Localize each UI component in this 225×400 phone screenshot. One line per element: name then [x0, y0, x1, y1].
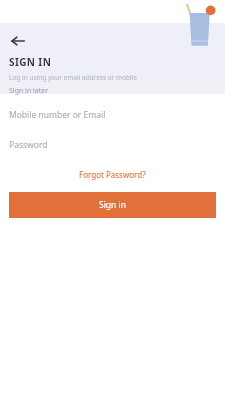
staticText: Mobile number or Email: [9, 109, 106, 121]
button[interactable]: Password: [9, 133, 216, 157]
staticText: Sign in later: [9, 86, 49, 96]
button[interactable]: Sign in: [9, 192, 216, 218]
staticText: Log in using your email address or mobil…: [9, 73, 138, 82]
staticText: Forgot Password?: [79, 169, 146, 180]
button[interactable]: Back: [4, 27, 32, 55]
staticText: Password: [9, 139, 48, 151]
staticText: Sign in: [99, 199, 126, 211]
button[interactable]: Forgot Password?: [77, 167, 148, 182]
button[interactable]: Mobile number or Email: [9, 103, 216, 127]
staticText: SIGN IN: [9, 55, 52, 69]
button[interactable]: Sign in later: [9, 86, 49, 96]
